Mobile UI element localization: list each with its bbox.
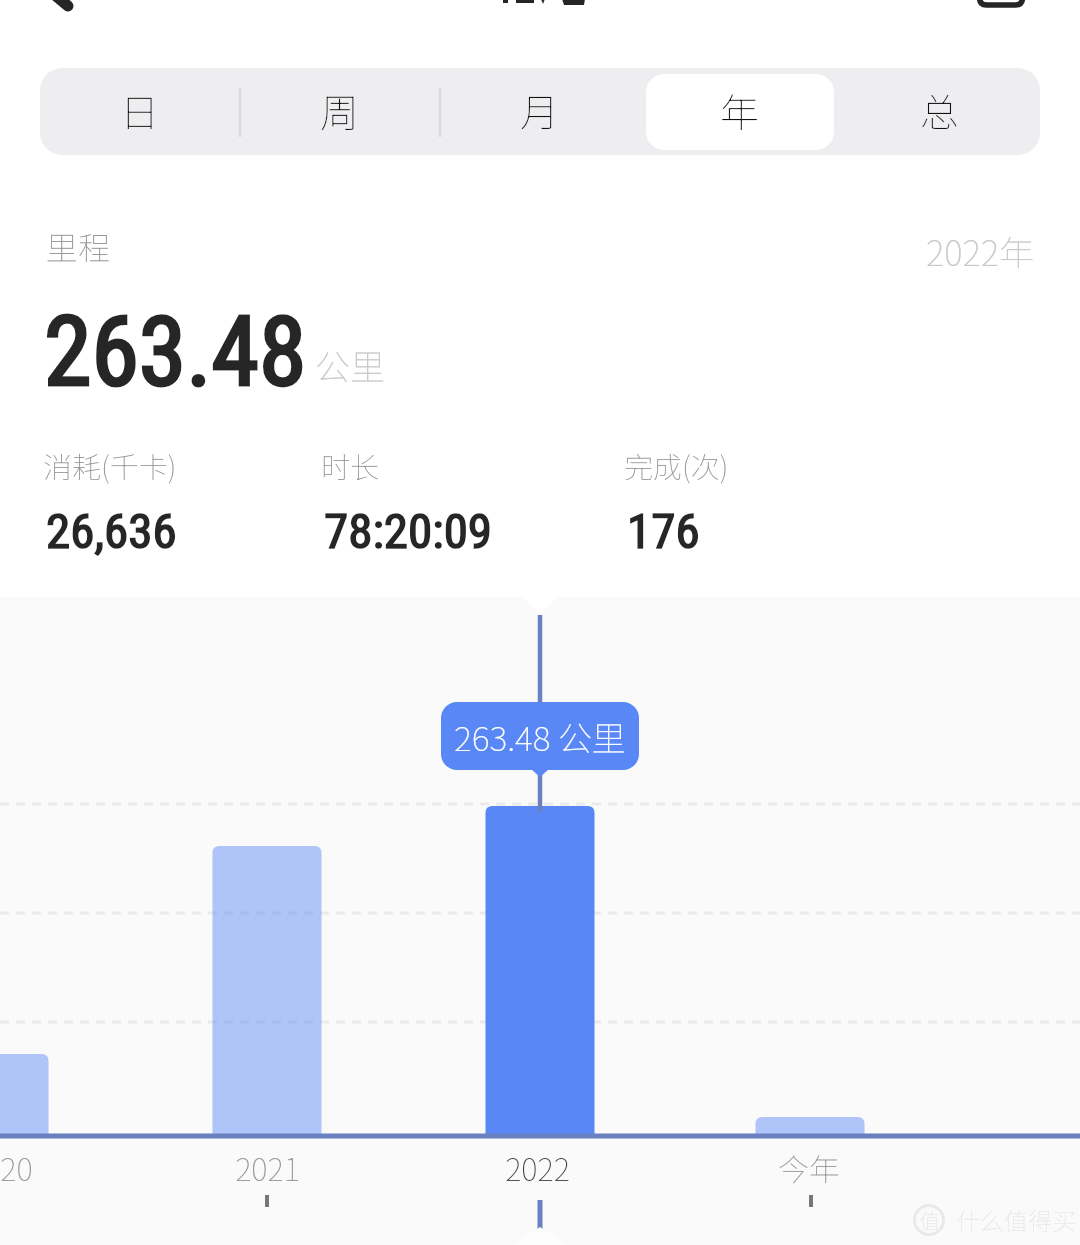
button[interactable]: 今年 <box>778 1145 840 1190</box>
button[interactable]: Back <box>26 0 106 26</box>
staticText: 什么值得买 <box>956 1202 1076 1237</box>
button[interactable]: 周 <box>240 68 440 155</box>
staticText: 月 <box>520 82 560 138</box>
staticText: 消耗(千卡) <box>43 444 177 486</box>
button[interactable]: 2021 <box>235 1145 300 1190</box>
staticText: 2022年 <box>926 225 1034 276</box>
staticText: 78:20:09 <box>324 503 493 560</box>
staticText: 26,636 <box>46 503 177 560</box>
staticText: 年 <box>720 82 760 138</box>
staticText: 周 <box>320 82 360 138</box>
staticText: 2022 <box>505 1145 570 1190</box>
button[interactable]: 20 <box>0 1145 33 1190</box>
staticText: 263.48 <box>44 296 307 409</box>
button[interactable]: Calendar <box>955 0 1045 26</box>
staticText: 里程 <box>46 223 111 269</box>
staticText: 263.48 公里 <box>454 712 626 761</box>
staticText: 2021 <box>235 1145 300 1190</box>
button[interactable]: 月 <box>440 68 640 155</box>
staticText: 总 <box>920 82 960 138</box>
staticText: 时长 <box>321 444 380 486</box>
staticText: 今年 <box>778 1145 840 1190</box>
button[interactable]: 2022 <box>505 1145 570 1190</box>
button[interactable]: 263.48 公里 <box>441 702 639 770</box>
staticText: 完成(次) <box>624 444 729 486</box>
staticText: 176 <box>627 503 700 560</box>
staticText: 公里 <box>315 339 386 390</box>
button[interactable]: 总 <box>840 68 1040 155</box>
button[interactable]: 日 <box>40 68 240 155</box>
staticText: 日 <box>120 82 160 138</box>
staticText: 值 <box>919 1205 940 1235</box>
button[interactable]: 年 <box>640 68 840 155</box>
staticText: 20 <box>0 1145 33 1190</box>
